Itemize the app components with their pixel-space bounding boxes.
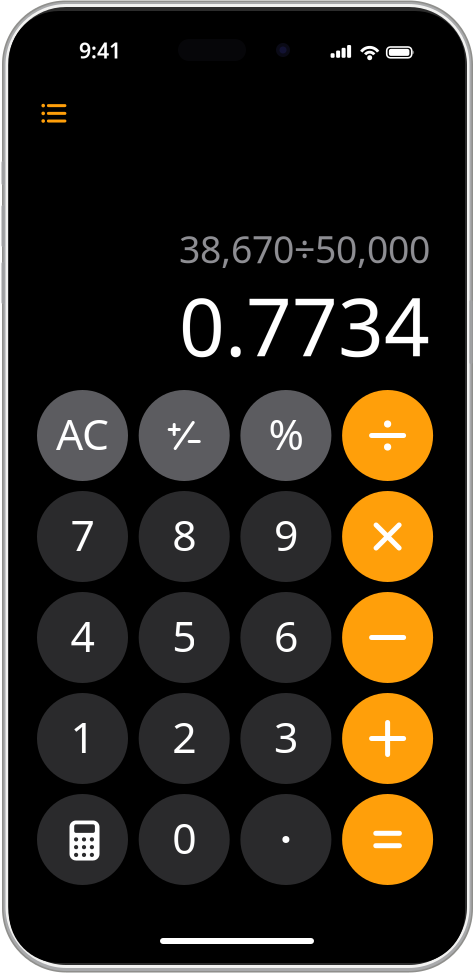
button[interactable]: Multiply bbox=[342, 491, 433, 582]
button[interactable]: AC bbox=[37, 390, 128, 481]
button[interactable]: Subtract bbox=[342, 592, 433, 683]
button[interactable]: Scientific calculator bbox=[37, 794, 128, 885]
button[interactable]: 2 bbox=[139, 693, 230, 784]
staticText: 8 bbox=[172, 506, 196, 563]
button[interactable]: 9 bbox=[240, 491, 331, 582]
staticText: 2 bbox=[172, 708, 196, 765]
staticText: 0.7734 bbox=[179, 272, 430, 378]
staticText: 9 bbox=[274, 506, 298, 563]
button[interactable]: 6 bbox=[240, 592, 331, 683]
staticText: 0 bbox=[172, 809, 196, 866]
button[interactable]: 1 bbox=[37, 693, 128, 784]
button[interactable]: Decimal point bbox=[240, 794, 331, 885]
button[interactable]: % bbox=[240, 390, 331, 481]
button[interactable]: 5 bbox=[139, 592, 230, 683]
button[interactable]: Add bbox=[342, 693, 433, 784]
button[interactable]: Plus Minus bbox=[139, 390, 230, 481]
button[interactable]: 3 bbox=[240, 693, 331, 784]
button[interactable]: History bbox=[32, 92, 76, 136]
staticText: AC bbox=[56, 405, 109, 462]
staticText: 4 bbox=[70, 607, 94, 664]
staticText: 3 bbox=[274, 708, 298, 765]
staticText: 7 bbox=[70, 506, 94, 563]
staticText: 9:41 bbox=[79, 36, 121, 64]
staticText: % bbox=[268, 405, 303, 462]
button[interactable]: 8 bbox=[139, 491, 230, 582]
button[interactable]: Equals bbox=[342, 794, 433, 885]
button[interactable]: 4 bbox=[37, 592, 128, 683]
staticText: 1 bbox=[70, 708, 94, 765]
staticText: 5 bbox=[172, 607, 196, 664]
staticText: 6 bbox=[274, 607, 298, 664]
button[interactable]: Divide bbox=[342, 390, 433, 481]
button[interactable]: 7 bbox=[37, 491, 128, 582]
button[interactable]: 0 bbox=[139, 794, 230, 885]
staticText: 38,670÷50,000 bbox=[179, 224, 430, 274]
